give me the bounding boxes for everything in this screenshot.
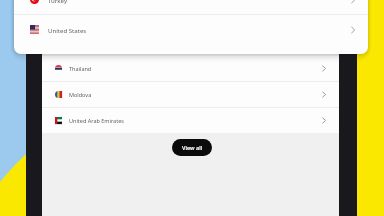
staticText: United States — [48, 26, 87, 34]
other: Open — [322, 65, 326, 72]
staticText: View all — [182, 144, 203, 152]
button[interactable]: United States — [14, 15, 368, 44]
staticText: Thailand — [69, 65, 92, 72]
other: Open — [322, 91, 326, 98]
staticText: Turkey — [48, 0, 68, 4]
staticText: Moldova — [69, 91, 92, 98]
button[interactable]: Turkey — [14, 0, 368, 14]
other: Open — [351, 0, 355, 4]
staticText: United Arab Emirates — [69, 117, 124, 124]
button[interactable]: View all — [172, 139, 212, 156]
other: Open — [351, 26, 355, 34]
button[interactable]: United Arab Emirates — [42, 108, 339, 133]
button[interactable]: Moldova — [42, 82, 339, 107]
button[interactable]: Thailand — [42, 56, 339, 81]
other: Open — [322, 117, 326, 124]
